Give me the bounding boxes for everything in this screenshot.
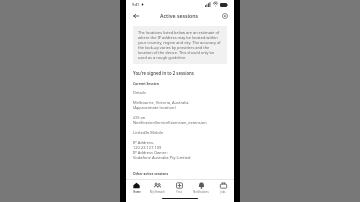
- staticText: Melbourne, Victoria, Australia: [133, 100, 189, 105]
- staticText: Other active sessions: [133, 171, 169, 175]
- button[interactable]: Jobs: [212, 180, 234, 195]
- staticText: Details: [133, 90, 146, 95]
- button[interactable]: Back: [131, 11, 140, 20]
- button[interactable]: Settings: [220, 11, 229, 20]
- button[interactable]: Home: [126, 180, 147, 195]
- staticText: You're signed in to 2 sessions: [133, 70, 194, 76]
- button[interactable]: Post: [168, 180, 190, 195]
- staticText: Notifications: [193, 190, 209, 194]
- staticText: IP Address Owner:: [133, 150, 168, 155]
- staticText: IP Address:: [133, 140, 155, 145]
- staticText: 120.23.127.109: [133, 145, 162, 150]
- staticText: Home: [133, 190, 141, 194]
- staticText: The locations listed below are an estima…: [138, 30, 222, 60]
- button[interactable]: My Network: [147, 180, 168, 195]
- staticText: Jobs: [220, 190, 226, 194]
- button[interactable]: Notifications: [190, 180, 212, 195]
- staticText: (Approximate location): [133, 105, 176, 110]
- staticText: My Network: [150, 190, 165, 194]
- staticText: Post: [176, 190, 182, 194]
- staticText: Vodafone Australia Pty Limited: [133, 155, 191, 160]
- staticText: NotificationServiceExtension_extension: [133, 120, 207, 125]
- staticText: Active sessions: [160, 12, 199, 19]
- staticText: 9:41: [132, 2, 140, 7]
- staticText: LinkedIn Mobile: [133, 130, 164, 135]
- staticText: iOS on: [133, 115, 146, 120]
- staticText: Current Session: [133, 81, 159, 85]
